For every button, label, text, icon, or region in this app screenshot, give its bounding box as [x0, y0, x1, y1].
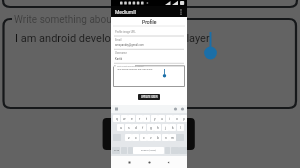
- staticText: w: [123, 117, 126, 121]
- button[interactable]: z: [125, 134, 132, 141]
- staticText: r: [139, 117, 141, 121]
- button[interactable]: ?123: [112, 147, 120, 154]
- button[interactable]: k: [169, 124, 176, 131]
- staticText: English (India): [141, 149, 157, 152]
- staticText: g: [150, 126, 152, 130]
- staticText: I am android developer and share player: [15, 32, 210, 45]
- staticText: Profile image URL: [115, 31, 136, 34]
- staticText: y: [154, 117, 156, 121]
- staticText: s: [128, 126, 130, 130]
- staticText: h: [157, 126, 159, 130]
- button[interactable]: j: [162, 124, 169, 131]
- button[interactable]: English (India): [133, 147, 164, 154]
- button[interactable]: g: [147, 124, 154, 131]
- staticText: Write something about: [14, 14, 115, 26]
- staticText: l: [180, 126, 181, 130]
- staticText: I am android developer and share player: [117, 68, 153, 70]
- staticText: f: [142, 126, 144, 130]
- button[interactable]: a: [117, 124, 124, 131]
- staticText: k: [172, 126, 174, 130]
- button[interactable]: t: [143, 115, 150, 122]
- staticText: ?123: [114, 149, 119, 152]
- staticText: j: [165, 126, 166, 130]
- button[interactable]: l: [177, 124, 184, 131]
- button[interactable]: y: [151, 115, 158, 122]
- button[interactable]: o: [173, 115, 180, 122]
- button[interactable]: p: [180, 115, 187, 122]
- staticText: i: [169, 117, 170, 121]
- staticText: amspandey@gmail.com: [115, 43, 144, 46]
- staticText: a: [120, 126, 122, 130]
- staticText: z: [128, 136, 130, 140]
- button[interactable]: n: [162, 134, 169, 141]
- staticText: p: [183, 117, 185, 121]
- button[interactable]: c: [140, 134, 147, 141]
- staticText: MediumII: [115, 9, 136, 15]
- staticText: v: [150, 136, 152, 140]
- button[interactable]: Recents: [126, 159, 133, 166]
- button[interactable]: h: [154, 124, 161, 131]
- button[interactable]: More options: [178, 9, 184, 15]
- button[interactable]: q: [113, 115, 120, 122]
- staticText: q: [116, 117, 118, 121]
- button[interactable]: v: [147, 134, 154, 141]
- button[interactable]: f: [139, 124, 146, 131]
- staticText: Email: [115, 39, 122, 42]
- staticText: d: [135, 126, 137, 130]
- button[interactable]: s: [125, 124, 132, 131]
- staticText: o: [176, 117, 178, 121]
- staticText: Username: [115, 52, 127, 55]
- staticText: UPDATE USER: [141, 96, 158, 99]
- button[interactable]: r: [136, 115, 143, 122]
- staticText: x: [135, 136, 137, 140]
- staticText: n: [165, 136, 167, 140]
- staticText: e: [131, 117, 133, 121]
- button[interactable]: m: [169, 134, 176, 141]
- staticText: Write something about yourself: [117, 65, 144, 67]
- button[interactable]: b: [154, 134, 161, 141]
- button[interactable]: x: [132, 134, 139, 141]
- staticText: t: [146, 117, 148, 121]
- staticText: c: [143, 136, 145, 140]
- button[interactable]: u: [158, 115, 165, 122]
- button[interactable]: Back: [165, 159, 172, 166]
- button[interactable]: i: [166, 115, 173, 122]
- button[interactable]: e: [128, 115, 135, 122]
- button[interactable]: Home: [146, 159, 153, 166]
- staticText: Kartik: [115, 57, 123, 60]
- staticText: b: [157, 136, 159, 140]
- button[interactable]: UPDATE USER: [138, 94, 160, 100]
- staticText: Profile: [142, 19, 157, 25]
- button[interactable]: w: [121, 115, 128, 122]
- staticText: u: [161, 117, 163, 121]
- staticText: m: [171, 136, 174, 140]
- button[interactable]: d: [132, 124, 139, 131]
